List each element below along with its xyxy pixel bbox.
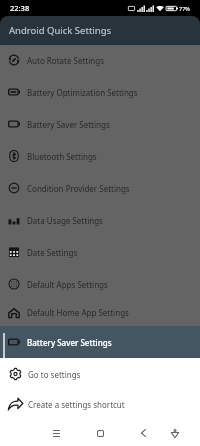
staticText: Android Quick Settings [9, 24, 112, 37]
button[interactable]: Recent apps [45, 422, 67, 444]
button[interactable]: Create a settings shortcut [0, 389, 200, 419]
button[interactable]: Back [132, 422, 154, 444]
button[interactable]: Home [89, 422, 111, 444]
button[interactable]: Hide keyboard [164, 422, 186, 444]
staticText: Default Apps Settings [27, 279, 108, 290]
button[interactable]: Battery Saver Settings [0, 108, 200, 140]
button[interactable]: Default Apps Settings [0, 268, 200, 300]
button[interactable]: Battery Saver Settings [0, 326, 200, 358]
staticText: 22:38 [10, 3, 30, 13]
staticText: Battery Optimization Settings [27, 87, 138, 98]
button[interactable]: Data Usage Settings [0, 204, 200, 236]
staticText: Default Home App Settings [27, 307, 129, 318]
staticText: Condition Provider Settings [27, 183, 130, 194]
staticText: Create a settings shortcut [28, 399, 125, 410]
button[interactable]: Bluetooth Settings [0, 140, 200, 172]
staticText: Battery Saver Settings [27, 119, 110, 130]
staticText: Go to settings [28, 369, 81, 380]
staticText: Auto Rotate Settings [27, 55, 104, 66]
button[interactable]: Auto Rotate Settings [0, 45, 200, 76]
staticText: Date Settings [27, 247, 78, 258]
button[interactable]: Date Settings [0, 236, 200, 268]
button[interactable]: Battery Optimization Settings [0, 76, 200, 108]
staticText: Battery Saver Settings [27, 337, 112, 348]
staticText: 77% [179, 5, 190, 12]
button[interactable]: Go to settings [0, 359, 200, 389]
staticText: Data Usage Settings [27, 215, 103, 226]
button[interactable]: Default Home App Settings [0, 300, 200, 325]
staticText: Bluetooth Settings [27, 151, 97, 162]
button[interactable]: Condition Provider Settings [0, 172, 200, 204]
